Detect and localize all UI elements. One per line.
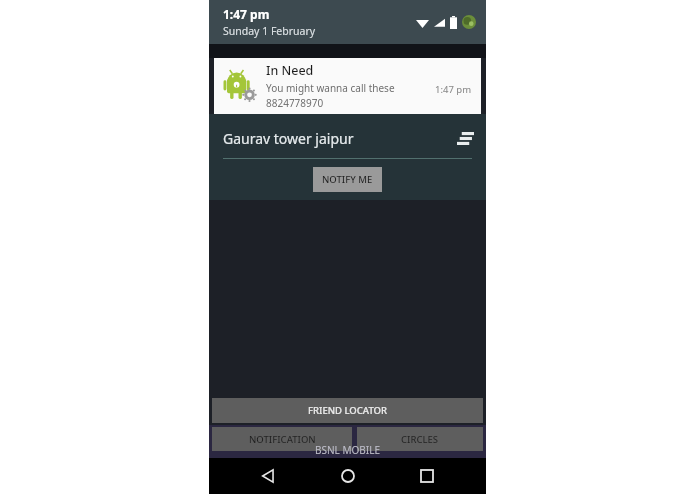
button[interactable]: In Need [214,58,481,114]
staticText: Gaurav tower jaipur [223,129,454,148]
staticText: In Need [266,62,314,79]
button[interactable]: Gaurav tower jaipur [223,122,476,154]
button[interactable]: FRIEND LOCATOR [212,398,483,423]
button[interactable]: Recent apps [407,458,447,494]
button[interactable]: Back [248,458,288,494]
staticText: BSNL MOBILE [315,443,380,457]
button[interactable]: NOTIFICATION [212,427,352,451]
staticText: CIRCLES [401,433,439,446]
staticText: Sunday 1 February [223,24,316,38]
staticText: NOTIFY ME [322,173,373,186]
staticText: NOTIFICATION [249,433,316,446]
button[interactable]: NOTIFY ME [313,167,382,192]
staticText: FRIEND LOCATOR [308,404,387,417]
button[interactable]: Home [328,458,368,494]
staticText: 8824778970 [266,96,324,110]
staticText: 1:47 pm [223,6,270,22]
staticText: You might wanna call these [266,81,395,95]
staticText: 1:47 pm [435,83,472,96]
button[interactable]: Sort list [454,127,476,149]
button[interactable]: CIRCLES [357,427,483,451]
